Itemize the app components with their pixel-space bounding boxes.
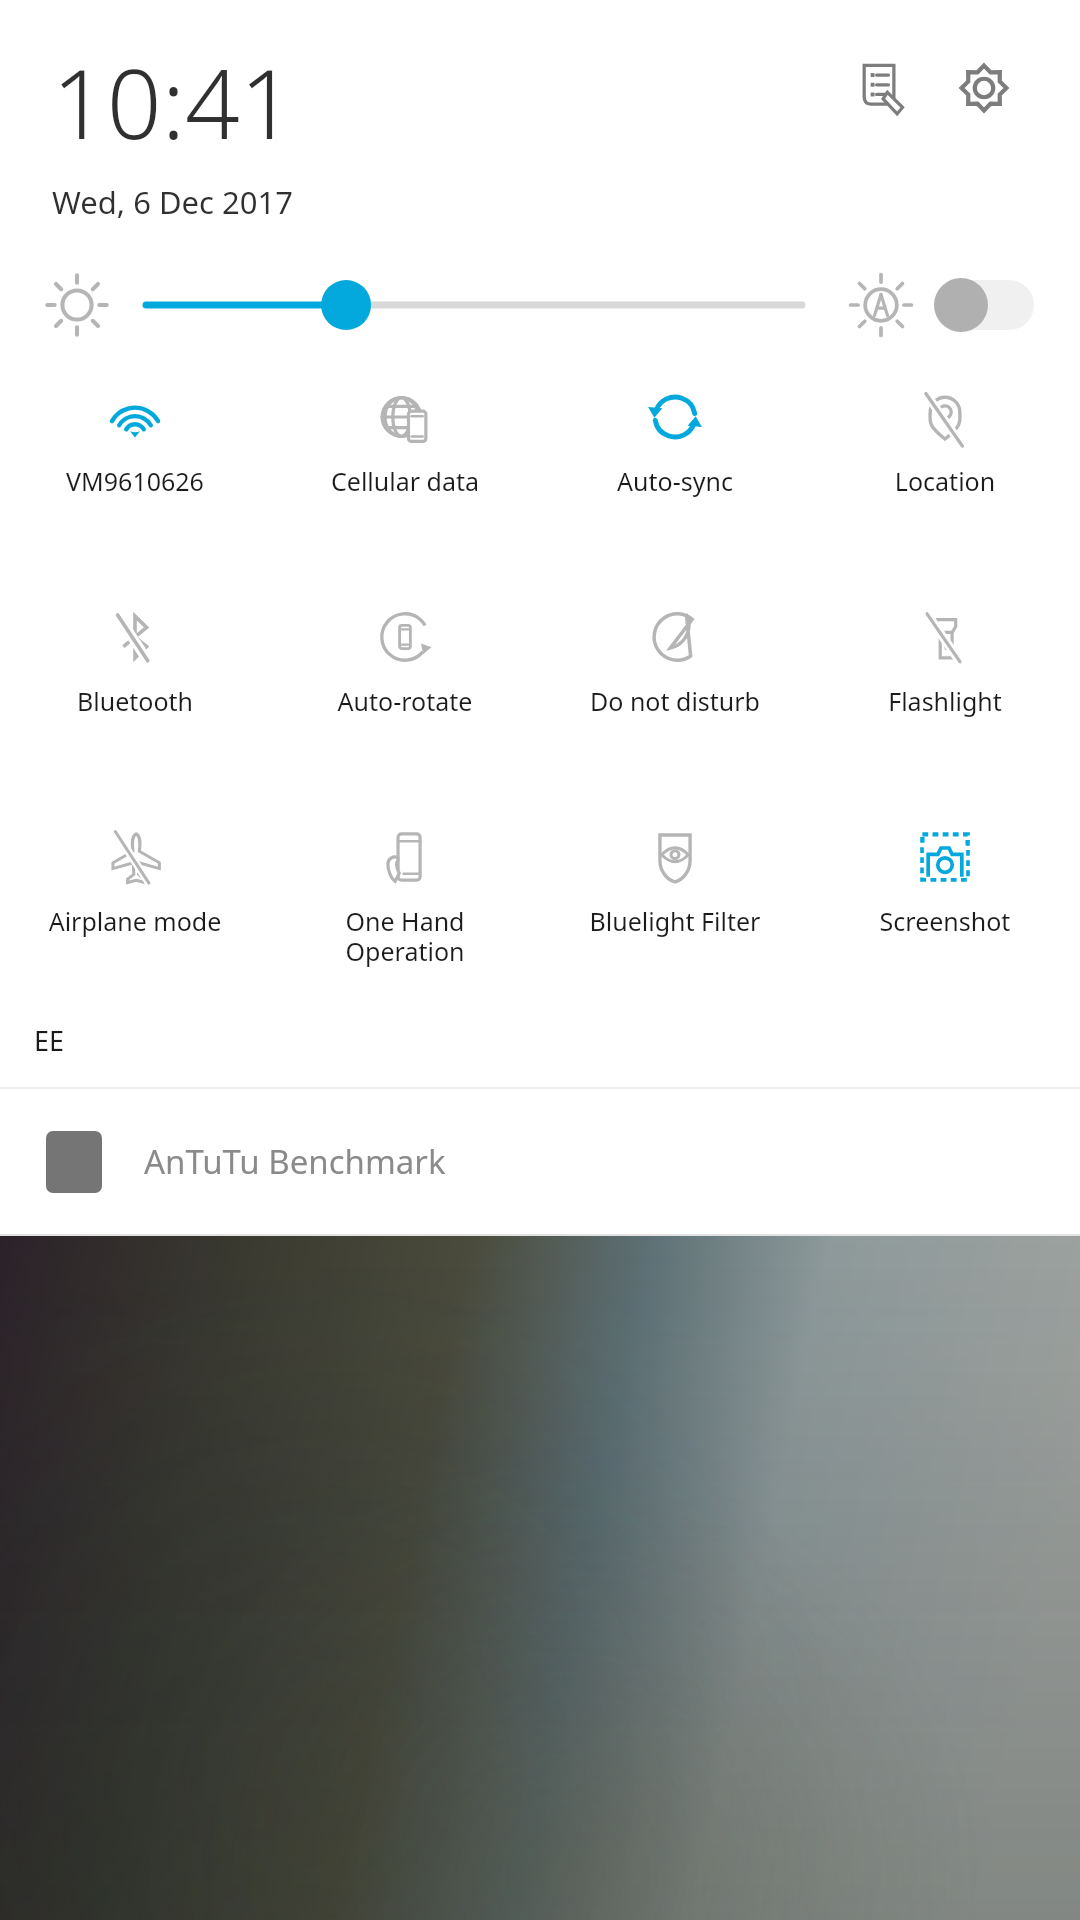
staticText: Bluetooth [0, 684, 270, 718]
staticText: VM9610626 [0, 464, 270, 498]
staticText: Cellular data [270, 464, 540, 498]
staticText: Wed, 6 Dec 2017 [52, 181, 293, 223]
staticText: Auto-sync [540, 464, 810, 498]
button[interactable]: AnTuTu Benchmark [0, 1089, 1080, 1234]
staticText: Airplane mode [0, 904, 270, 938]
staticText: AnTuTu Benchmark [144, 1139, 446, 1184]
button[interactable]: Brightness [146, 270, 802, 340]
staticText: Do not disturb [540, 684, 810, 718]
staticText: Auto-rotate [270, 684, 540, 718]
button[interactable]: One Hand Operation [270, 824, 540, 969]
button[interactable]: Settings [948, 52, 1020, 124]
button[interactable]: Flashlight [810, 604, 1080, 718]
button[interactable]: VM9610626 [0, 384, 270, 498]
button[interactable]: Bluelight Filter [540, 824, 810, 938]
button[interactable]: Do not disturb [540, 604, 810, 718]
button[interactable]: Auto-sync [540, 384, 810, 498]
staticText: Bluelight Filter [540, 904, 810, 938]
button[interactable]: Auto-rotate [270, 604, 540, 718]
staticText: Screenshot [810, 904, 1080, 938]
staticText: EE [34, 1022, 65, 1059]
button[interactable]: Bluetooth [0, 604, 270, 718]
button[interactable]: Screenshot [810, 824, 1080, 938]
button[interactable]: Airplane mode [0, 824, 270, 938]
button[interactable]: Edit quick settings [846, 52, 918, 124]
staticText: One Hand Operation [270, 904, 540, 969]
button[interactable]: Location [810, 384, 1080, 498]
staticText: Location [810, 464, 1080, 498]
button[interactable]: Cellular data [270, 384, 540, 498]
button[interactable]: Auto brightness [934, 277, 1034, 333]
staticText: 10:41 [52, 36, 295, 167]
staticText: Flashlight [810, 684, 1080, 718]
